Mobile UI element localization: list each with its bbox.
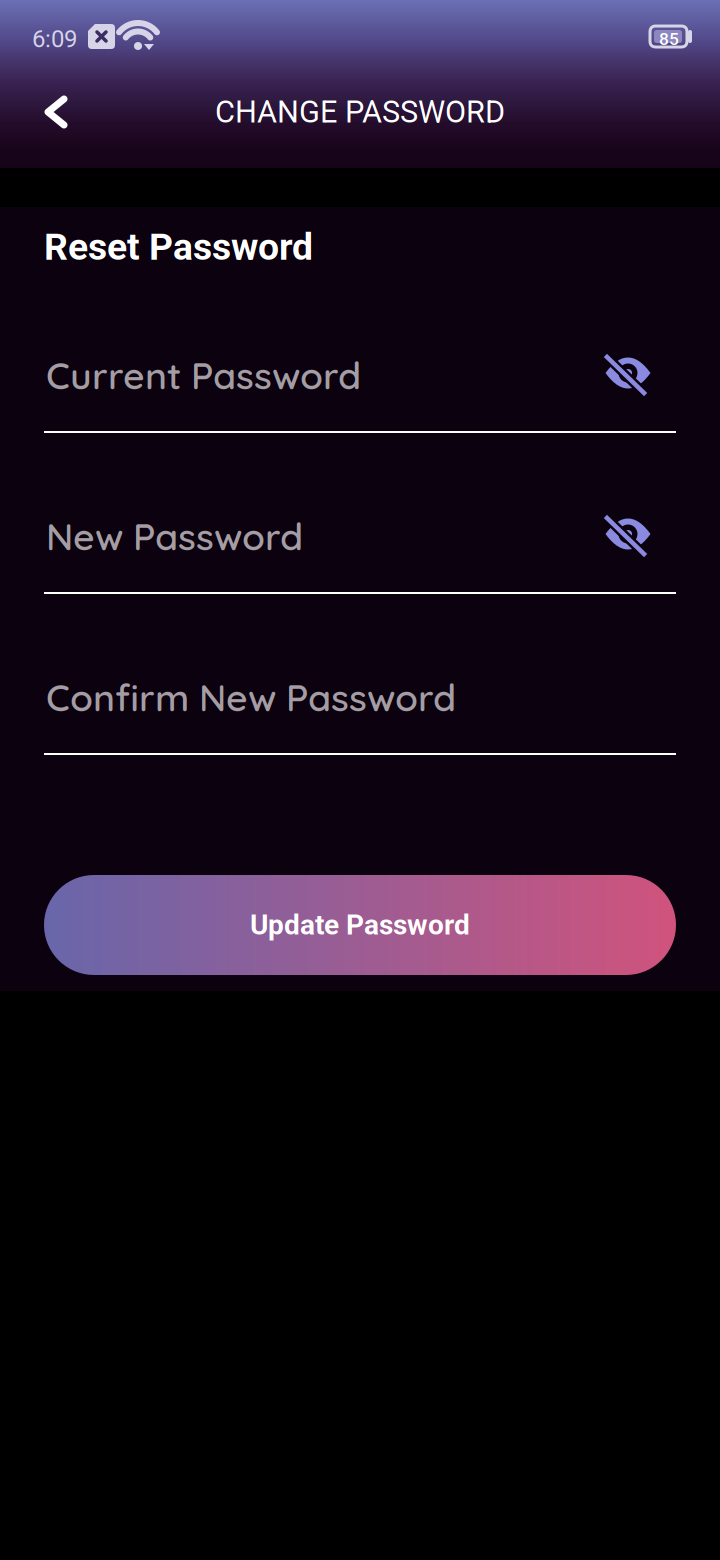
- button[interactable]: Back: [0, 0, 112, 168]
- staticText: Current Password: [46, 352, 361, 399]
- button[interactable]: Show current password: [0, 0, 720, 1560]
- button[interactable]: Show new password: [0, 0, 720, 1560]
- staticText: 6:09: [32, 25, 77, 53]
- button[interactable]: Update Password: [44, 875, 676, 975]
- staticText: CHANGE PASSWORD: [215, 94, 505, 130]
- staticText: Confirm New Password: [46, 674, 456, 721]
- staticText: New Password: [46, 513, 303, 560]
- staticText: 85: [659, 29, 679, 49]
- staticText: Reset Password: [44, 225, 313, 269]
- staticText: Update Password: [250, 909, 470, 941]
